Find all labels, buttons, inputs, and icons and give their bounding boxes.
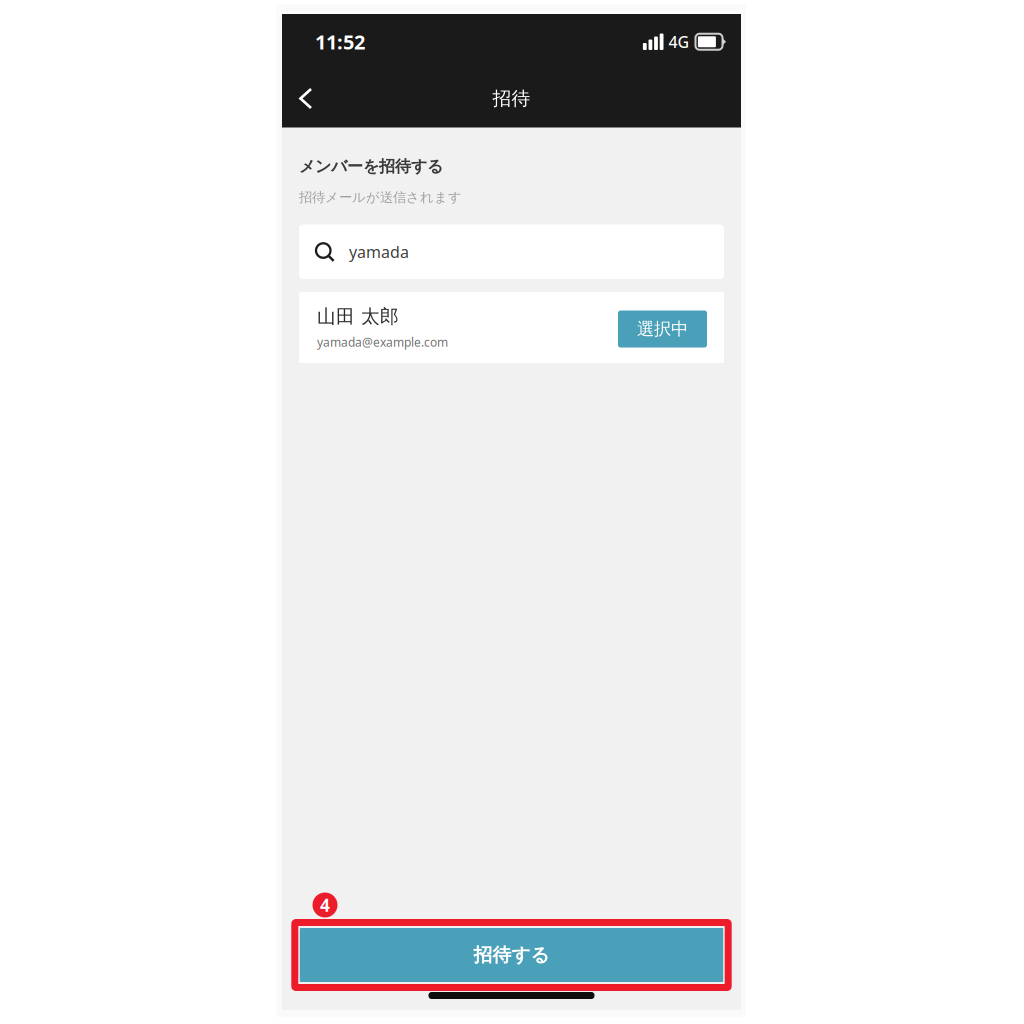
staticText: 招待する xyxy=(473,943,549,966)
staticText: yamada@example.com xyxy=(317,334,448,350)
staticText: 山田 太郎 xyxy=(317,305,399,328)
staticText: 4 xyxy=(320,893,330,916)
button[interactable]: 招待する xyxy=(295,922,728,987)
staticText: 招待メールが送信されます xyxy=(299,189,462,206)
button[interactable]: yamada xyxy=(299,224,724,279)
staticText: メンバーを招待する xyxy=(299,156,443,176)
staticText: yamada xyxy=(349,241,409,262)
button[interactable]: Back xyxy=(285,75,327,121)
button[interactable]: 選択中 xyxy=(618,310,707,347)
staticText: 4G xyxy=(668,31,689,52)
staticText: 招待 xyxy=(492,87,530,110)
staticText: 11:52 xyxy=(315,28,365,55)
staticText: 選択中 xyxy=(637,318,688,340)
